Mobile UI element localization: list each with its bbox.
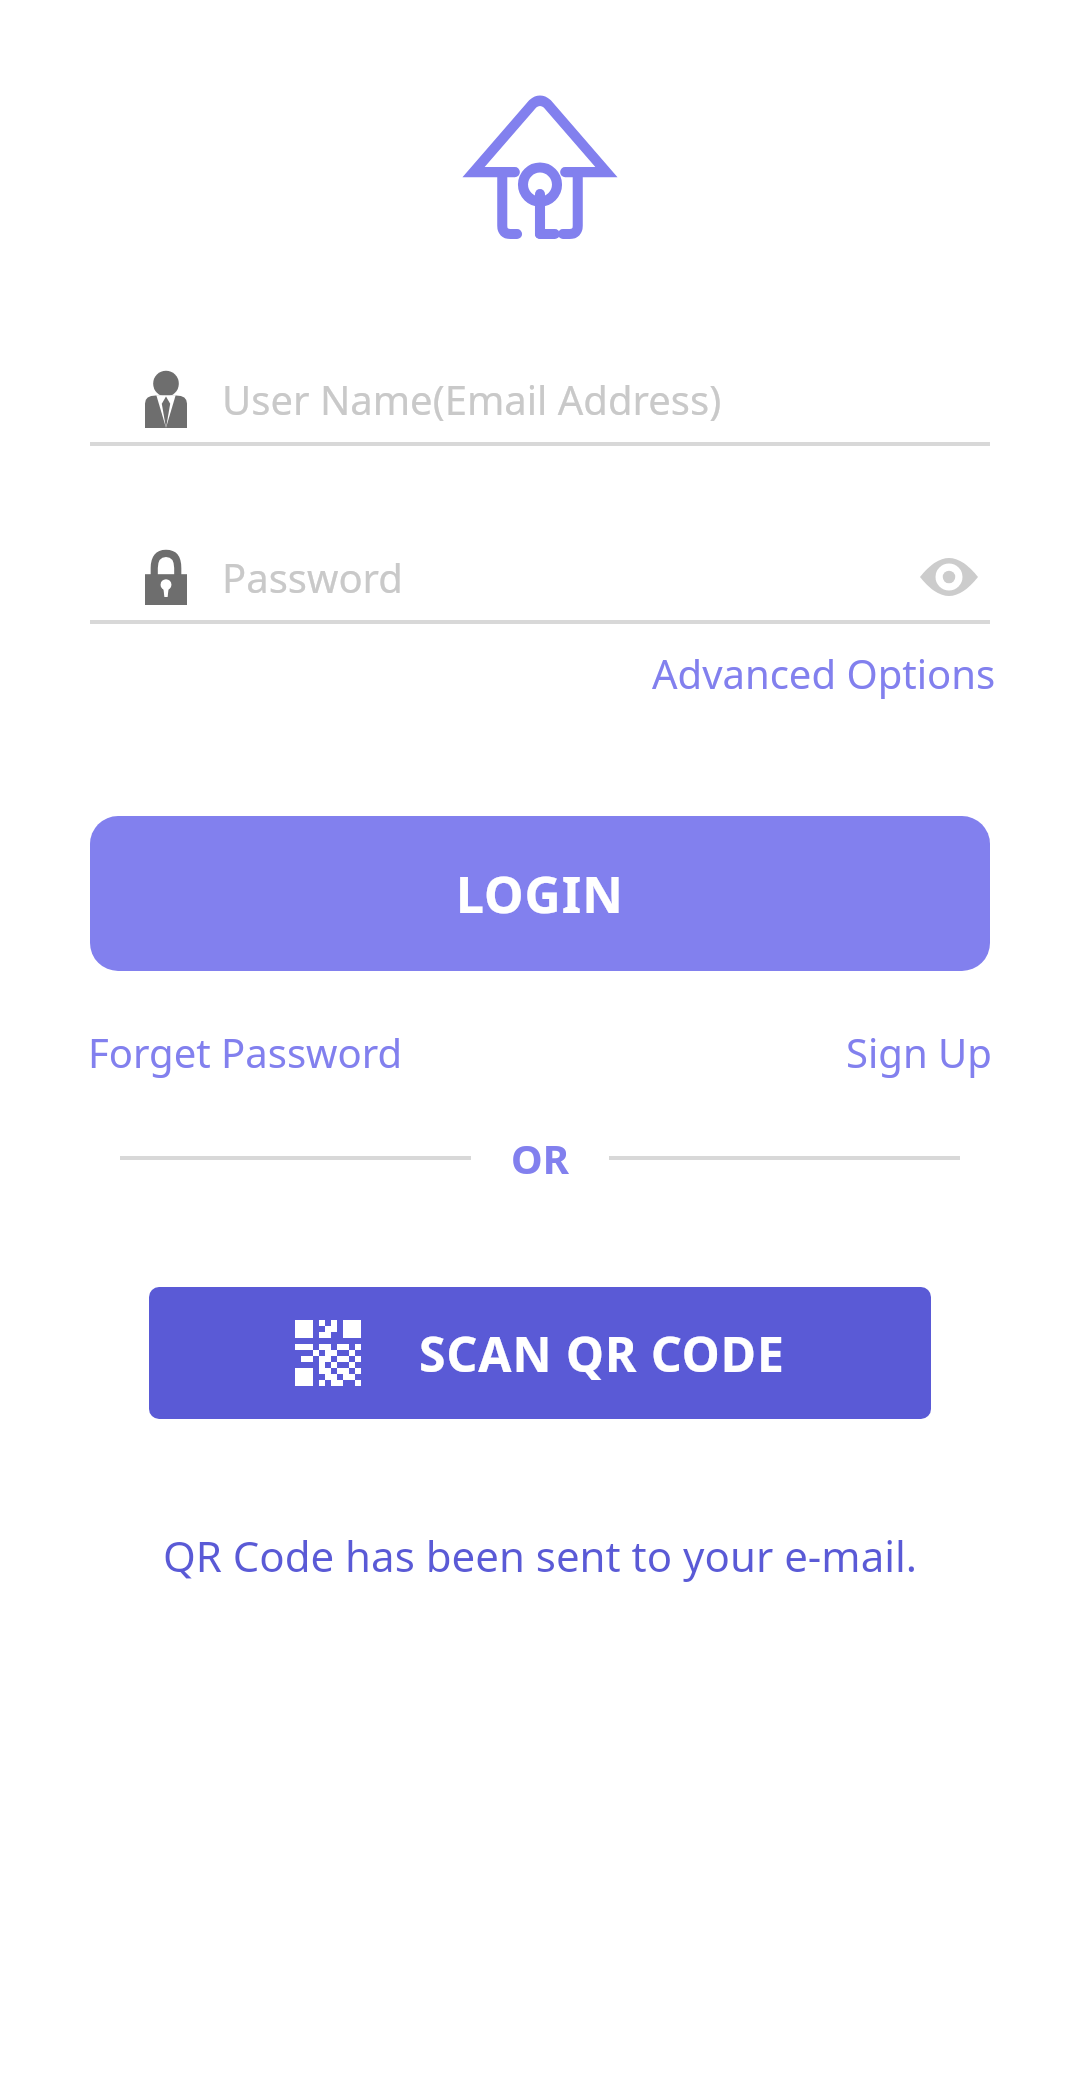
staticText: OR [511,1131,569,1185]
button[interactable]: Show password [914,542,984,612]
button[interactable]: User Name(Email Address) [90,356,990,446]
staticText: LOGIN [456,860,624,928]
staticText: Password [222,550,403,604]
staticText: Forget Password [88,1025,402,1079]
button[interactable]: SCAN QR CODE [149,1287,931,1419]
staticText: User Name(Email Address) [222,372,722,426]
other: App logo [466,92,614,239]
button[interactable]: Forget Password [82,1017,408,1087]
staticText: QR Code has been sent to your e-mail. [0,1527,1080,1584]
button[interactable]: Advanced Options [648,638,1000,708]
staticText: SCAN QR CODE [419,1321,785,1386]
staticText: Sign Up [846,1025,992,1079]
button[interactable]: LOGIN [90,816,990,971]
button[interactable]: Password [90,534,990,624]
staticText: Advanced Options [652,646,996,700]
button[interactable]: Sign Up [840,1017,998,1087]
